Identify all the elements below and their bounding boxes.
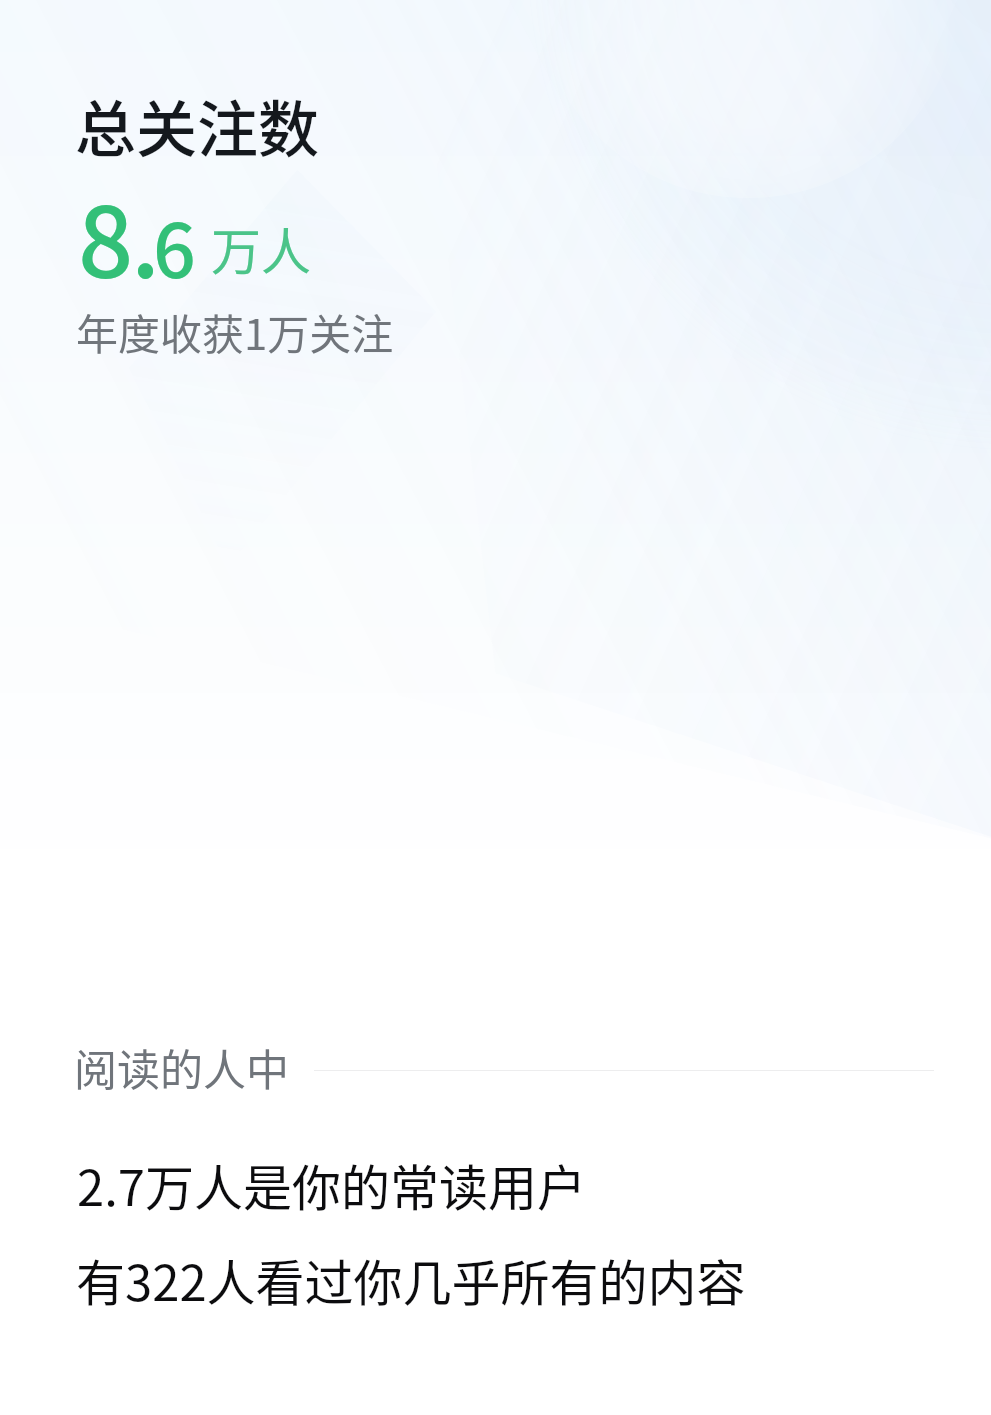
staticText: 6 [153, 191, 196, 300]
button[interactable]: 2.7万人是你的常读用户 [60, 1130, 930, 1220]
staticText: 万人 [211, 212, 311, 284]
staticText: 总关注数 [75, 81, 320, 169]
staticText: . [131, 165, 160, 305]
button[interactable]: 有322人看过你几乎所有的内容 [60, 1226, 930, 1316]
staticText: 有322人看过你几乎所有的内容 [76, 1244, 746, 1315]
staticText: 2.7万人是你的常读用户 [77, 1149, 587, 1220]
staticText: 8 [78, 165, 134, 305]
button[interactable]: 总关注数 [60, 60, 930, 370]
staticText: 阅读的人中 [74, 1036, 289, 1098]
staticText: 年度收获1万关注 [76, 301, 394, 362]
